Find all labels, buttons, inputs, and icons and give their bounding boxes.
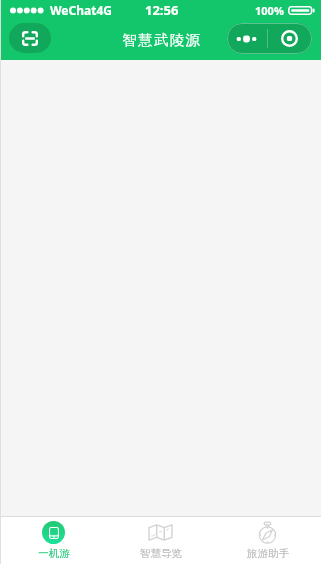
button[interactable]: 智慧导览 [107,517,214,564]
button[interactable]: 旅游助手 [214,517,321,564]
staticText: 一机游 [38,547,70,560]
staticText: WeChat4G [50,2,112,18]
button[interactable]: More options [227,23,267,54]
staticText: 12:56 [145,1,179,19]
staticText: 100% [255,3,284,18]
button[interactable]: 一机游 [0,517,107,564]
staticText: 旅游助手 [247,547,289,560]
staticText: 智慧武陵源 [122,31,202,49]
staticText: 智慧导览 [140,547,182,560]
button[interactable]: Scan QR code [9,23,51,53]
button[interactable]: Close mini program [268,23,312,54]
